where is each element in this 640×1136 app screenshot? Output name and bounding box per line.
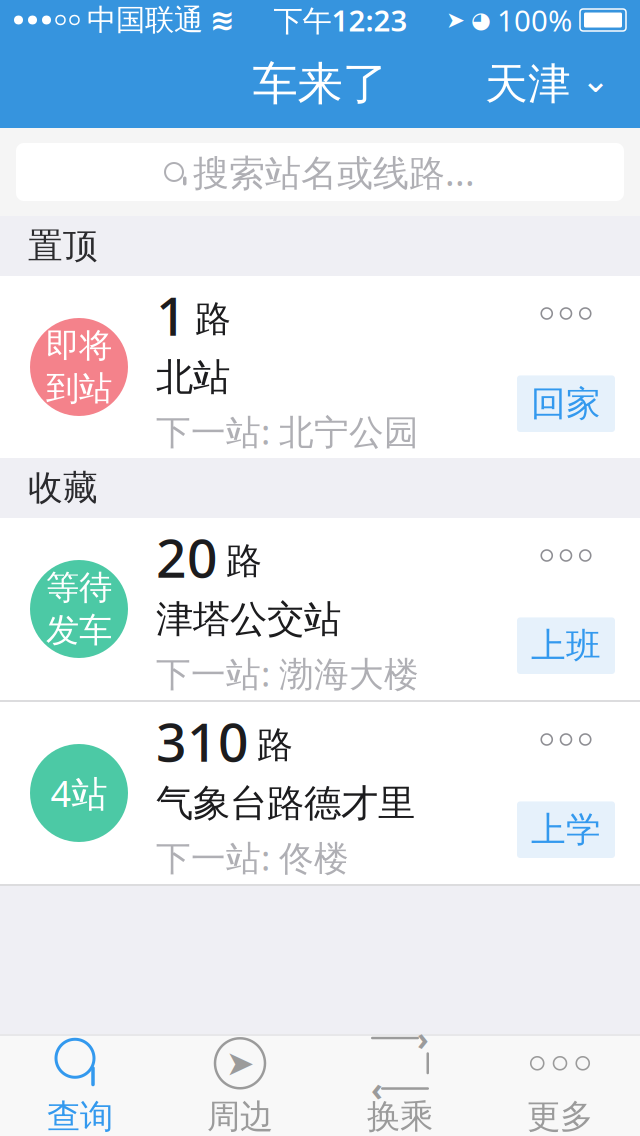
button[interactable]: 即将	[0, 276, 640, 458]
staticText: 下一站: 北宁公园	[156, 408, 419, 454]
staticText: 310	[156, 706, 249, 776]
button[interactable]: 更多	[480, 1035, 640, 1136]
staticText: 下午12:23	[273, 0, 407, 39]
button[interactable]: 等待	[0, 518, 640, 700]
button[interactable]: ➤	[160, 1035, 320, 1136]
staticText: 路	[195, 297, 231, 341]
staticText: ➤	[446, 7, 465, 33]
staticText: ≋	[210, 3, 235, 37]
staticText: ‹	[371, 1067, 383, 1110]
staticText: ⌄	[581, 60, 610, 100]
staticText: ◕	[471, 7, 491, 33]
staticText: 津塔公交站	[156, 596, 341, 642]
staticText: ➤	[225, 1044, 254, 1083]
button[interactable]: 天津	[471, 48, 624, 120]
staticText: 即将	[46, 325, 112, 366]
staticText: 1	[156, 280, 187, 350]
staticText: 100%	[497, 0, 572, 39]
staticText: 等待	[46, 567, 112, 608]
staticText: 到站	[46, 368, 112, 409]
staticText: ›	[417, 1017, 429, 1059]
staticText: 20	[156, 522, 218, 592]
button[interactable]: 查询	[0, 1035, 160, 1136]
staticText: 回家	[531, 382, 601, 425]
button[interactable]: ›	[320, 1035, 480, 1136]
staticText: 天津	[485, 58, 571, 110]
staticText: 上班	[531, 624, 601, 667]
staticText: 中国联通	[87, 2, 203, 38]
staticText: 下一站: 渤海大楼	[156, 650, 419, 696]
staticText: 路	[257, 723, 293, 767]
staticText: 查询	[47, 1096, 113, 1136]
staticText: 气象台路德才里	[156, 780, 415, 826]
staticText: 搜索站名或线路...	[193, 148, 475, 196]
staticText: 上学	[531, 808, 601, 851]
staticText: 4站	[50, 769, 107, 817]
staticText: 换乘	[367, 1096, 433, 1136]
staticText: 路	[226, 539, 262, 583]
button[interactable]: 4站	[0, 702, 640, 884]
staticText: 发车	[46, 610, 112, 651]
staticText: 收藏	[28, 467, 98, 509]
staticText: 北站	[156, 354, 230, 400]
staticText: 周边	[207, 1096, 273, 1136]
staticText: 置顶	[28, 225, 98, 267]
staticText: 下一站: 佟楼	[156, 834, 349, 880]
staticText: 车来了	[252, 56, 387, 112]
button[interactable]: 搜索站名或线路...	[0, 128, 640, 216]
staticText: 更多	[527, 1096, 593, 1136]
